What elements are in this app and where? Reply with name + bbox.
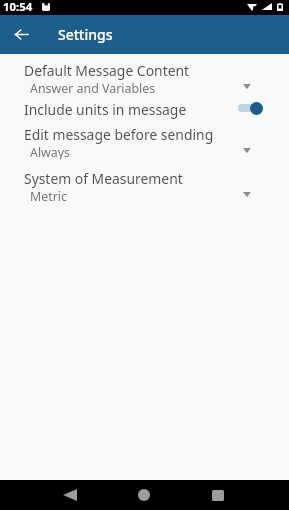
button[interactable]: Navigate up: [8, 21, 34, 47]
staticText: Always: [30, 144, 71, 159]
staticText: System of Measurement: [24, 169, 183, 188]
staticText: Include units in message: [24, 100, 187, 119]
staticText: Metric: [30, 188, 67, 203]
staticText: Edit message before sending: [24, 125, 214, 144]
staticText: Settings: [58, 25, 113, 44]
staticText: Default Message Content: [24, 61, 190, 80]
button[interactable]: Edit message before sending: [0, 120, 289, 159]
staticText: 10:54: [3, 0, 33, 14]
button[interactable]: Include units in message: [0, 95, 289, 120]
button[interactable]: Default Message Content: [0, 56, 289, 95]
staticText: Answer and Variables: [30, 80, 156, 95]
button[interactable]: Home: [130, 480, 158, 510]
button[interactable]: Back: [56, 480, 84, 510]
button[interactable]: System of Measurement: [0, 164, 289, 203]
button[interactable]: Recent apps: [204, 480, 232, 510]
